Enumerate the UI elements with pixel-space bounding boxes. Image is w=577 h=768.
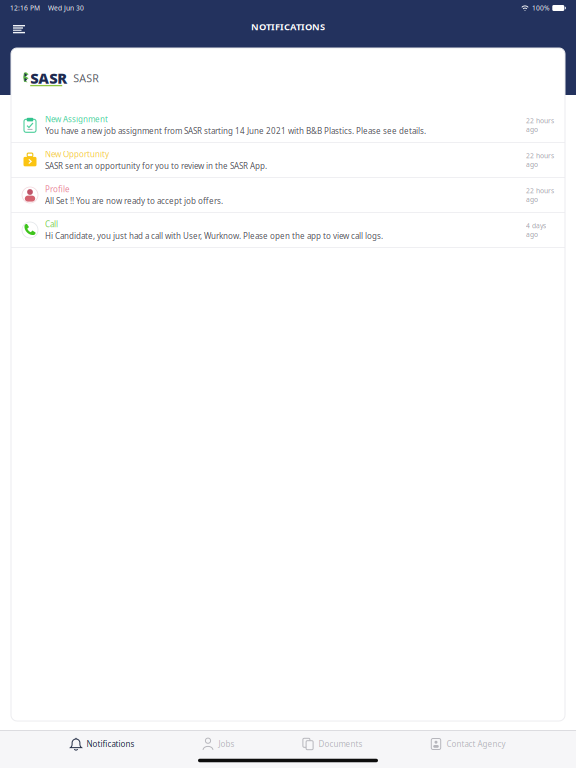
button[interactable]: Profile: [11, 178, 565, 212]
staticText: 4 days ago: [526, 221, 546, 239]
staticText: You have a new job assignment from SASR …: [45, 125, 426, 136]
staticText: New Assignment: [45, 114, 108, 124]
staticText: Wed Jun 30: [48, 4, 84, 12]
staticText: Jobs: [218, 739, 234, 749]
button[interactable]: Jobs: [200, 731, 236, 757]
staticText: NOTIFICATIONS: [251, 20, 325, 33]
staticText: Documents: [318, 739, 362, 749]
staticText: Hi Candidate, you just had a call with U…: [45, 230, 383, 241]
staticText: Profile: [45, 184, 70, 194]
button[interactable]: Menu: [0, 19, 31, 45]
staticText: SASR: [73, 71, 99, 85]
staticText: 12:16 PM: [10, 4, 40, 12]
staticText: Call: [45, 219, 58, 229]
staticText: 22 hours ago: [526, 151, 554, 169]
staticText: SASR sent an opportunity for you to revi…: [45, 160, 267, 171]
staticText: 100%: [532, 4, 550, 12]
button[interactable]: Notifications: [68, 731, 136, 757]
staticText: New Opportunity: [45, 149, 109, 159]
button[interactable]: Contact Agency: [428, 731, 507, 757]
staticText: Notifications: [86, 739, 134, 749]
button[interactable]: Documents: [300, 731, 364, 757]
staticText: 22 hours ago: [526, 116, 554, 134]
staticText: SASR: [30, 68, 67, 88]
button[interactable]: Call: [11, 213, 565, 247]
staticText: All Set !! You are now ready to accept j…: [45, 195, 223, 206]
button[interactable]: New Opportunity: [11, 143, 565, 177]
button[interactable]: New Assignment: [11, 108, 565, 142]
staticText: Contact Agency: [446, 739, 505, 749]
staticText: 22 hours ago: [526, 186, 554, 204]
